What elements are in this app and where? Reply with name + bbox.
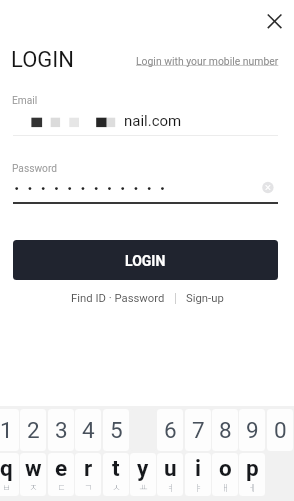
- staticText: t: [112, 455, 120, 481]
- staticText: w: [25, 455, 42, 481]
- staticText: ㄱ: [84, 480, 93, 494]
- staticText: 2: [27, 417, 40, 443]
- button[interactable]: Sign-up: [184, 290, 226, 307]
- staticText: i: [195, 455, 201, 481]
- staticText: Login with your mobile number: [136, 55, 279, 67]
- button[interactable]: 3: [48, 409, 74, 451]
- staticText: ㅑ: [194, 480, 203, 494]
- staticText: 3: [55, 417, 68, 443]
- staticText: u: [164, 455, 177, 481]
- button[interactable]: Find ID · Password: [69, 290, 167, 307]
- button[interactable]: 4: [75, 409, 101, 451]
- button[interactable]: LOGIN: [13, 240, 278, 280]
- staticText: p: [246, 455, 259, 481]
- staticText: 1: [0, 417, 13, 443]
- button[interactable]: o: [212, 453, 238, 496]
- staticText: 5: [110, 417, 123, 443]
- staticText: 7: [192, 417, 205, 443]
- button[interactable]: u: [157, 453, 183, 496]
- staticText: ㅂ: [2, 480, 11, 494]
- button[interactable]: r: [75, 453, 101, 496]
- button[interactable]: 1: [0, 409, 19, 451]
- button[interactable]: 2: [20, 409, 46, 451]
- staticText: y: [137, 455, 149, 481]
- staticText: ㅛ: [139, 480, 148, 494]
- staticText: LOGIN: [11, 47, 74, 73]
- staticText: nail.com: [124, 112, 182, 130]
- staticText: o: [219, 455, 232, 481]
- staticText: q: [0, 455, 13, 481]
- staticText: ㅈ: [29, 480, 38, 494]
- button[interactable]: 5: [103, 409, 129, 451]
- button[interactable]: 7: [185, 409, 211, 451]
- button[interactable]: p: [239, 453, 265, 496]
- staticText: Find ID · Password: [71, 292, 165, 305]
- button[interactable]: i: [185, 453, 211, 496]
- staticText: ㅕ: [166, 480, 175, 494]
- staticText: 6: [164, 417, 177, 443]
- button[interactable]: 8: [212, 409, 238, 451]
- staticText: r: [84, 455, 93, 481]
- staticText: Email: [12, 95, 38, 107]
- staticText: 0: [274, 417, 287, 443]
- staticText: Password: [12, 163, 57, 175]
- staticText: ㅐ: [221, 480, 230, 494]
- staticText: 9: [246, 417, 259, 443]
- button[interactable]: 9: [239, 409, 265, 451]
- button[interactable]: 0: [267, 409, 293, 451]
- button[interactable]: e: [48, 453, 74, 496]
- staticText: ㅅ: [112, 480, 121, 494]
- button[interactable]: Clear password: [258, 178, 278, 198]
- staticText: LOGIN: [125, 253, 166, 269]
- button[interactable]: y: [130, 453, 156, 496]
- staticText: 4: [82, 417, 95, 443]
- staticText: 8: [219, 417, 232, 443]
- button[interactable]: Close: [262, 9, 287, 34]
- button[interactable]: t: [103, 453, 129, 496]
- staticText: ㅔ: [248, 480, 257, 494]
- staticText: ㄷ: [57, 480, 66, 494]
- button[interactable]: q: [0, 453, 19, 496]
- button[interactable]: w: [20, 453, 46, 496]
- staticText: e: [55, 455, 68, 481]
- staticText: Sign-up: [186, 292, 224, 305]
- button[interactable]: Login with your mobile number: [136, 55, 279, 67]
- button[interactable]: 6: [157, 409, 183, 451]
